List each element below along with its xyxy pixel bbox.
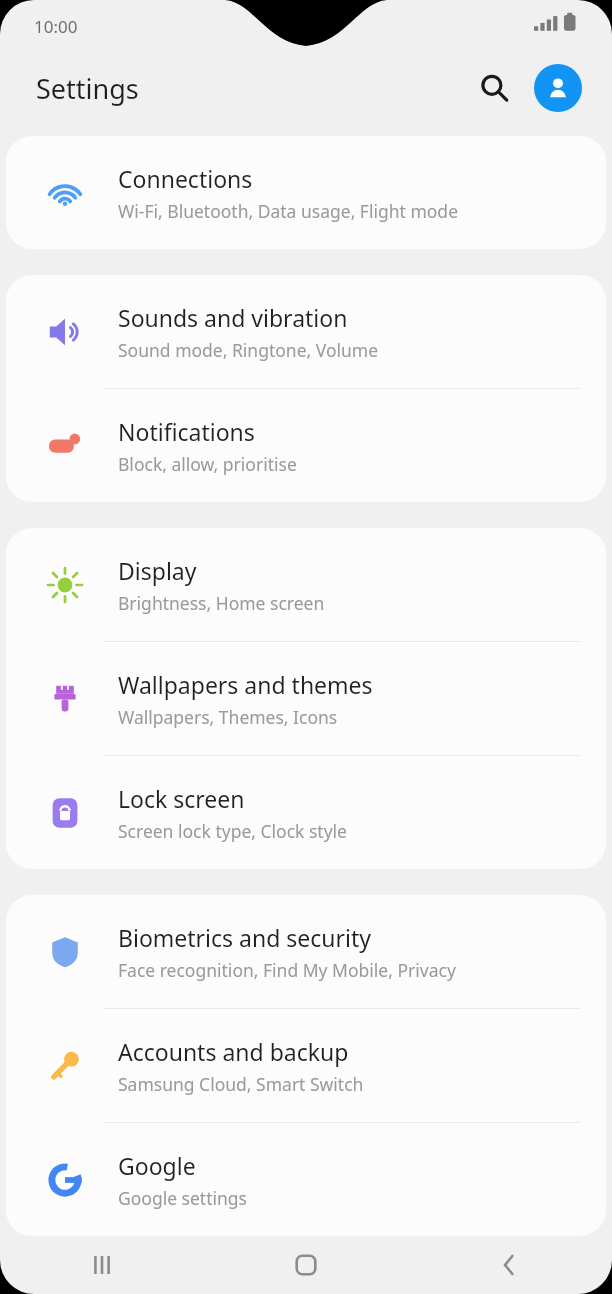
button[interactable]: Google <box>6 1123 606 1236</box>
staticText: Settings <box>36 70 139 107</box>
button[interactable]: Notifications <box>6 389 606 502</box>
button[interactable]: Lock screen <box>6 756 606 869</box>
staticText: Connections <box>118 163 253 194</box>
staticText: Display <box>118 555 197 586</box>
button[interactable]: Display <box>6 528 606 641</box>
button[interactable]: Back <box>408 1236 612 1294</box>
button[interactable]: Sounds and vibration <box>6 275 606 388</box>
button[interactable]: Accounts and backup <box>6 1009 606 1122</box>
staticText: Wi-Fi, Bluetooth, Data usage, Flight mod… <box>118 199 459 223</box>
staticText: Lock screen <box>118 783 245 814</box>
button[interactable]: Search <box>470 64 518 112</box>
button[interactable]: Connections <box>6 136 606 249</box>
button[interactable]: Biometrics and security <box>6 895 606 1008</box>
staticText: Brightness, Home screen <box>118 591 325 615</box>
staticText: Sounds and vibration <box>118 302 348 333</box>
button[interactable]: Recents <box>0 1236 204 1294</box>
button[interactable]: Wallpapers and themes <box>6 642 606 755</box>
staticText: Sound mode, Ringtone, Volume <box>118 338 379 362</box>
staticText: Wallpapers and themes <box>118 669 373 700</box>
staticText: Block, allow, prioritise <box>118 452 297 476</box>
button[interactable]: Home <box>204 1236 408 1294</box>
staticText: Notifications <box>118 416 255 447</box>
staticText: Face recognition, Find My Mobile, Privac… <box>118 958 456 982</box>
staticText: Google <box>118 1150 196 1181</box>
button[interactable]: Account <box>534 64 582 112</box>
staticText: Screen lock type, Clock style <box>118 819 347 843</box>
staticText: Google settings <box>118 1186 247 1210</box>
staticText: 10:00 <box>34 15 78 38</box>
staticText: Accounts and backup <box>118 1036 349 1067</box>
staticText: Biometrics and security <box>118 922 372 953</box>
staticText: Wallpapers, Themes, Icons <box>118 705 338 729</box>
staticText: Samsung Cloud, Smart Switch <box>118 1072 364 1096</box>
